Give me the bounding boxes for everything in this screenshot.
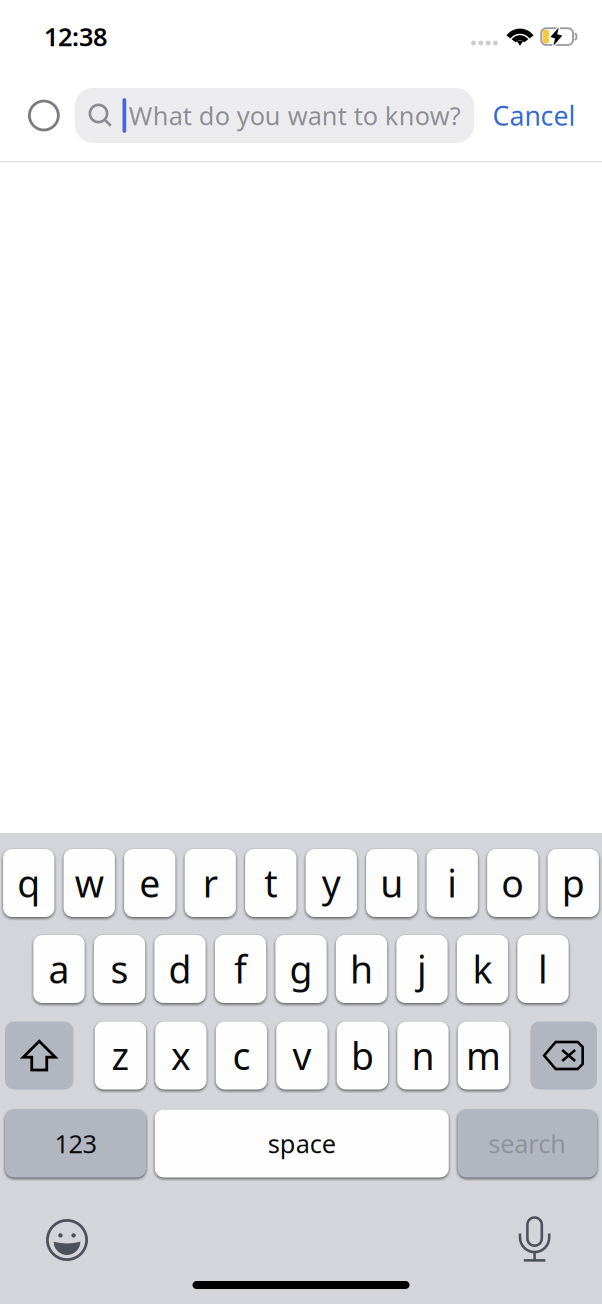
button[interactable]: z [95,1021,146,1089]
staticText: space [268,1127,336,1160]
staticText: i [447,858,457,908]
button[interactable]: n [397,1021,448,1089]
button[interactable]: w [64,849,115,917]
button[interactable]: Search field [75,88,474,143]
staticText: u [380,858,403,908]
button[interactable]: o [487,849,538,917]
button[interactable]: g [275,935,327,1003]
button[interactable]: y [306,849,357,917]
button[interactable]: Shift [5,1021,73,1089]
staticText: d [168,944,191,994]
button[interactable]: Cancel [480,88,588,143]
button[interactable]: d [154,935,206,1003]
staticText: n [411,1031,434,1080]
staticText: r [203,858,218,908]
staticText: v [292,1031,311,1080]
button[interactable]: 123 [5,1109,146,1177]
button[interactable]: Account [0,88,88,143]
staticText: a [48,944,69,994]
staticText: f [234,944,247,994]
button[interactable]: j [396,935,448,1003]
staticText: s [110,944,128,994]
button[interactable]: a [33,935,85,1003]
staticText: w [75,858,104,908]
button[interactable]: c [216,1021,267,1089]
button[interactable]: m [458,1021,509,1089]
staticText: search [488,1127,566,1160]
staticText: c [232,1031,250,1080]
staticText: What do you want to know? [129,99,461,132]
staticText: p [562,858,585,908]
staticText: o [501,858,524,908]
button[interactable]: u [366,849,417,917]
button[interactable]: e [124,849,175,917]
button[interactable]: Delete [530,1021,597,1089]
button[interactable]: i [427,849,478,917]
staticText: 12:38 [44,19,107,53]
button[interactable]: v [276,1021,327,1089]
staticText: e [139,858,160,908]
staticText: y [322,858,341,908]
button[interactable]: x [155,1021,206,1089]
button[interactable]: Emoji keyboard [46,1219,88,1261]
button[interactable]: b [337,1021,388,1089]
staticText: b [351,1031,374,1080]
button[interactable]: search [457,1109,597,1177]
staticText: 123 [54,1127,96,1160]
button[interactable]: t [245,849,296,917]
button[interactable]: r [185,849,236,917]
staticText: h [350,944,373,994]
button[interactable]: Dictation [520,1217,550,1262]
staticText: x [171,1031,191,1080]
staticText: q [17,858,40,908]
staticText: z [111,1031,129,1080]
button[interactable]: k [457,935,508,1003]
button[interactable]: f [215,935,266,1003]
button[interactable]: h [336,935,387,1003]
staticText: m [466,1031,501,1080]
button[interactable]: space [155,1109,449,1177]
staticText: g [289,944,312,994]
staticText: j [417,944,427,994]
button[interactable]: s [94,935,145,1003]
button[interactable]: p [548,849,599,917]
staticText: l [538,944,548,994]
button[interactable]: l [517,935,569,1003]
staticText: Cancel [492,98,575,133]
button[interactable]: q [3,849,54,917]
staticText: t [264,858,277,908]
staticText: k [472,944,492,994]
